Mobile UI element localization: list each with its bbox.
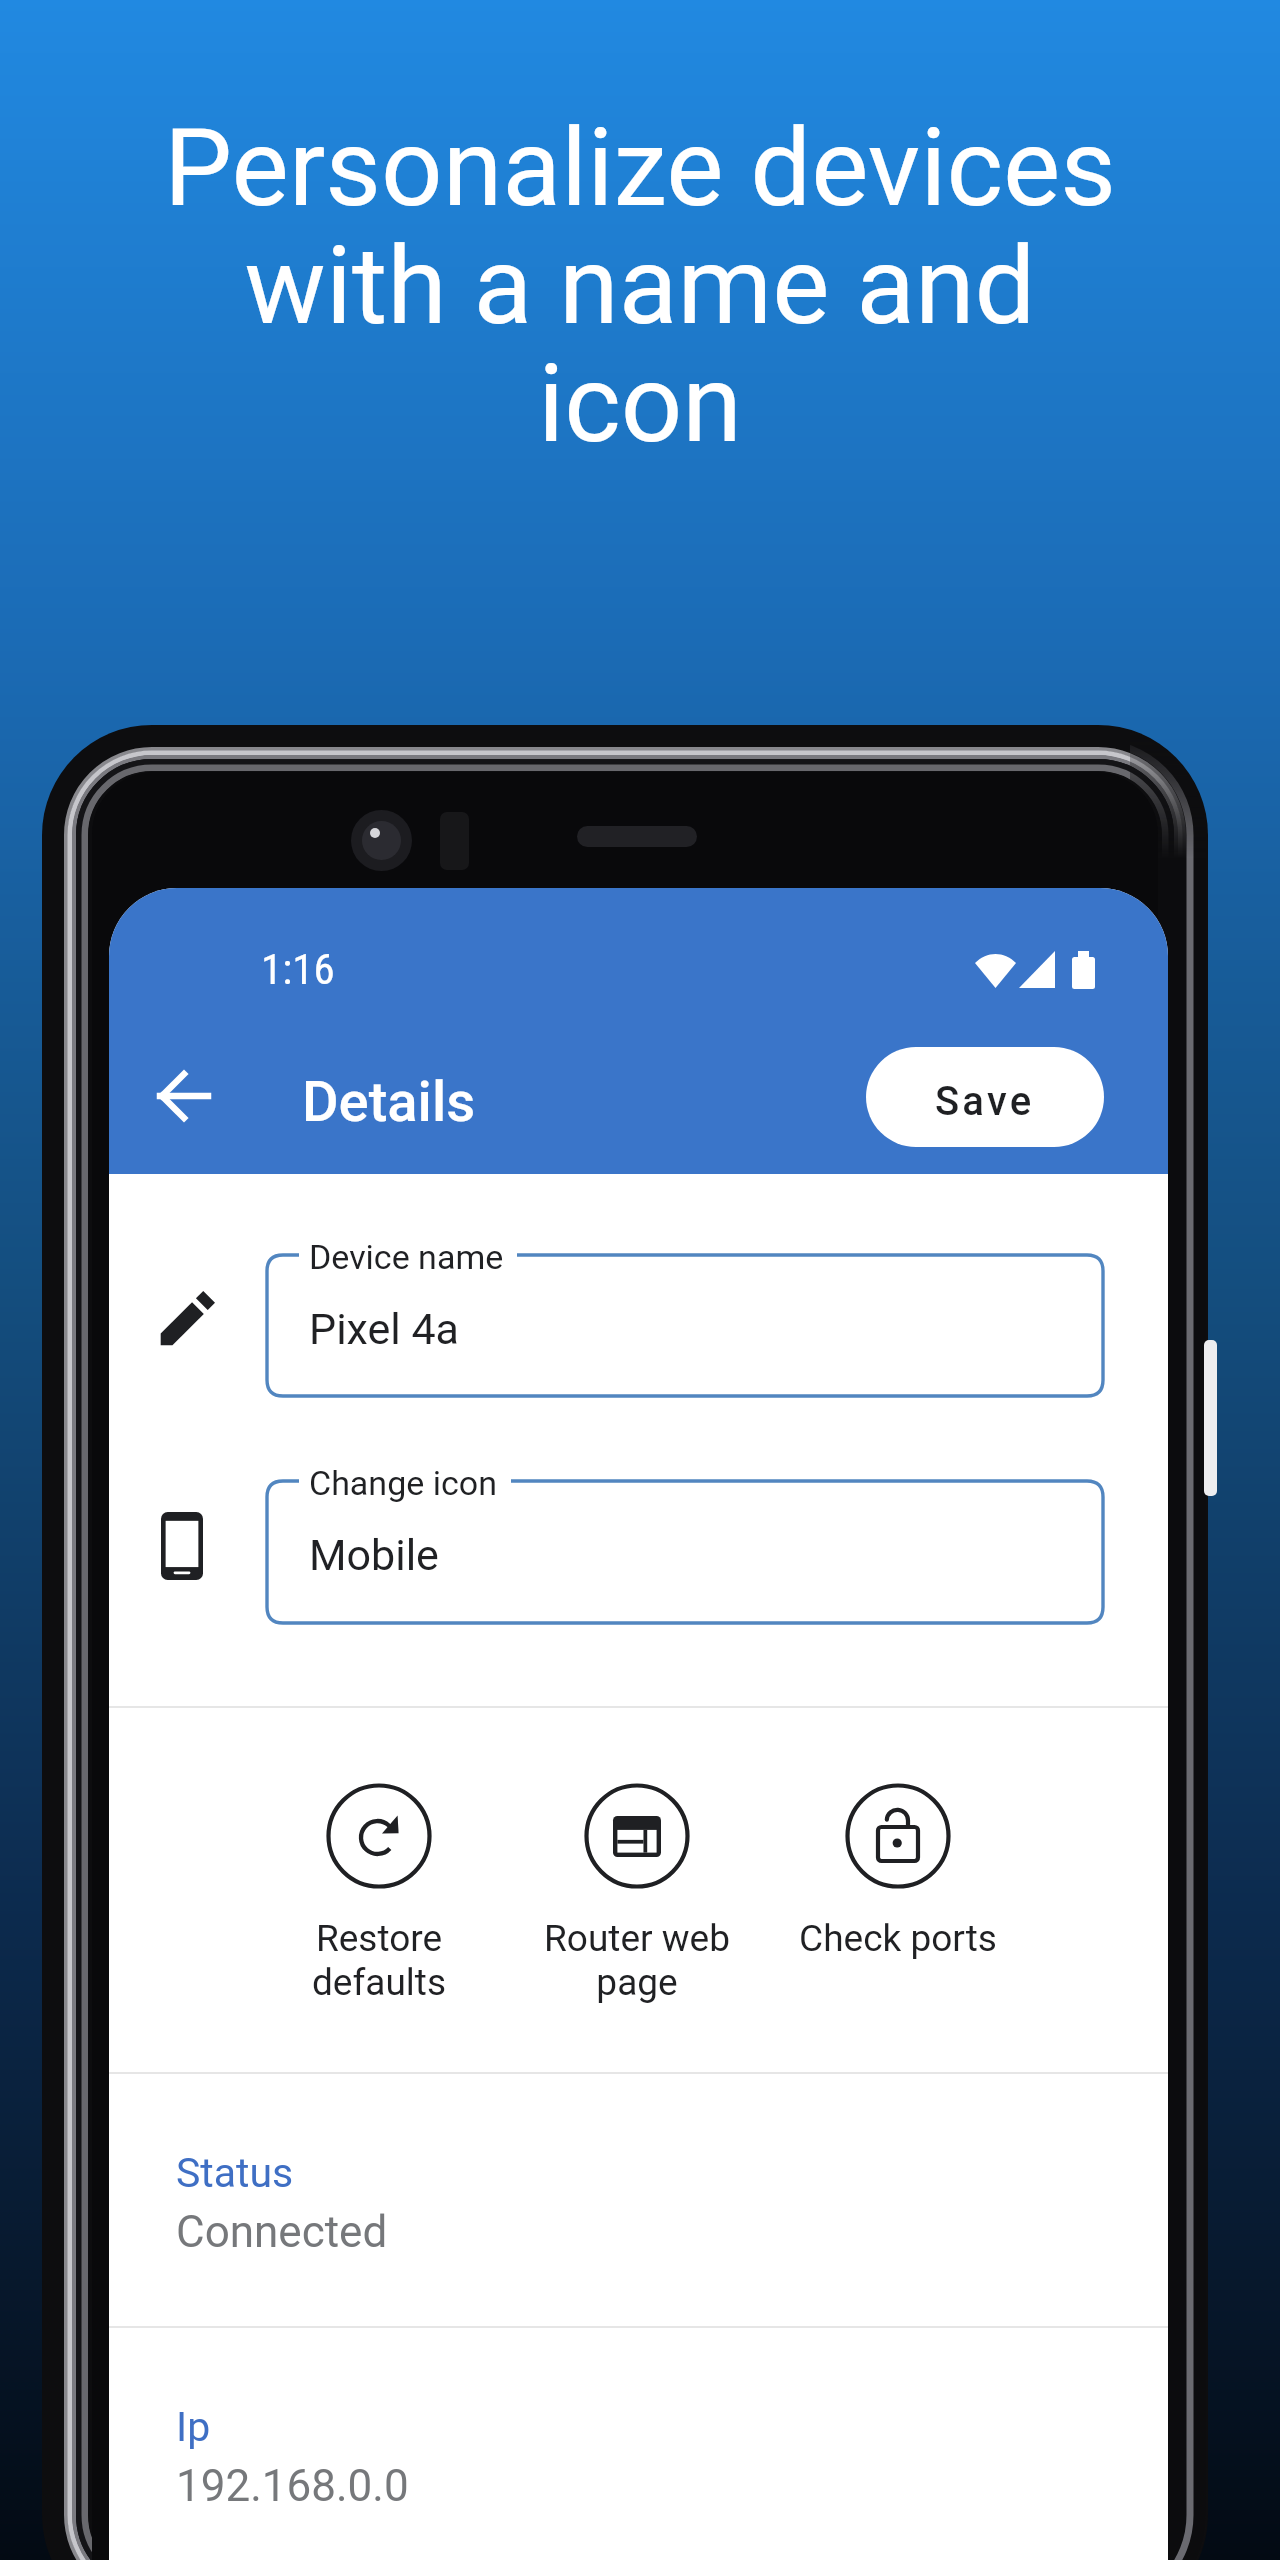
staticText: Connected: [176, 2206, 388, 2258]
button[interactable]: Back: [126, 1038, 242, 1154]
staticText: Change icon: [309, 1463, 497, 1503]
staticText: Pixel 4a: [309, 1304, 459, 1354]
button[interactable]: Save: [866, 1047, 1104, 1147]
button[interactable]: Device name: [267, 1255, 1103, 1396]
staticText: Check ports: [783, 1917, 1013, 1960]
button[interactable]: Restore defaults: [264, 1783, 494, 2023]
staticText: Save: [935, 1078, 1035, 1125]
staticText: Personalize devices with a name and icon: [60, 105, 1220, 468]
button[interactable]: Ip: [109, 2326, 1168, 2560]
staticText: Details: [302, 1069, 476, 1135]
staticText: 192.168.0.0: [176, 2460, 409, 2512]
staticText: Status: [176, 2149, 294, 2197]
staticText: Mobile: [309, 1530, 439, 1580]
button[interactable]: Status: [109, 2072, 1168, 2326]
staticText: Restore defaults: [264, 1917, 494, 2004]
staticText: Ip: [176, 2403, 211, 2451]
staticText: 1:16: [261, 944, 335, 994]
button[interactable]: Router web page: [522, 1783, 752, 2023]
button[interactable]: Change icon: [267, 1481, 1103, 1623]
staticText: Router web page: [522, 1917, 752, 2004]
staticText: Device name: [309, 1237, 504, 1277]
button[interactable]: Check ports: [783, 1783, 1013, 2023]
